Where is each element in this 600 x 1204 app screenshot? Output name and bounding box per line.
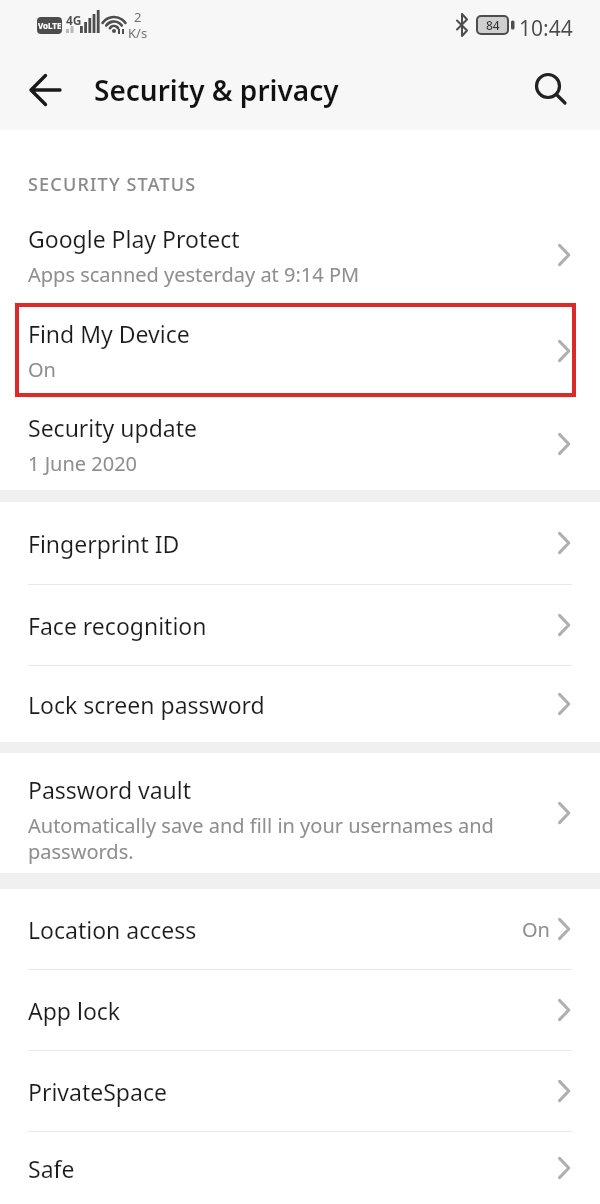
staticText: PrivateSpace (28, 1076, 167, 1107)
staticText: SECURITY STATUS (28, 172, 197, 197)
button[interactable]: Find My Device (0, 304, 600, 397)
staticText: VoLTE (38, 20, 62, 31)
staticText: 10:44 (519, 14, 573, 43)
staticText: App lock (28, 995, 121, 1026)
button[interactable]: Lock screen password (0, 666, 600, 742)
staticText: K/s (128, 24, 148, 42)
staticText: Password vault (28, 774, 192, 805)
staticText: 84 (486, 17, 500, 33)
staticText: Security & privacy (94, 71, 339, 109)
staticText: Safe (28, 1153, 75, 1184)
staticText: 2 (134, 8, 142, 26)
button[interactable] (18, 62, 74, 118)
button[interactable]: Password vault (0, 753, 600, 873)
button[interactable]: Google Play Protect (0, 207, 600, 303)
staticText: Find My Device (28, 318, 190, 349)
staticText: Location access (28, 914, 197, 945)
button[interactable]: Safe (0, 1132, 600, 1204)
button[interactable] (524, 63, 578, 117)
staticText: On (522, 916, 550, 943)
staticText: Apps scanned yesterday at 9:14 PM (28, 261, 360, 288)
button[interactable]: Location access (0, 889, 600, 969)
staticText: Lock screen password (28, 689, 265, 720)
button[interactable]: PrivateSpace (0, 1051, 600, 1131)
staticText: Google Play Protect (28, 223, 240, 254)
staticText: On (28, 356, 56, 383)
staticText: Fingerprint ID (28, 528, 180, 559)
button[interactable]: Face recognition (0, 585, 600, 665)
staticText: Security update (28, 412, 197, 443)
staticText: Automatically save and fill in your user… (28, 812, 494, 865)
staticText: Face recognition (28, 610, 207, 641)
button[interactable]: Fingerprint ID (0, 502, 600, 584)
button[interactable]: Security update (0, 398, 600, 490)
staticText: 4G (66, 12, 82, 28)
button[interactable]: App lock (0, 970, 600, 1050)
staticText: 1 June 2020 (28, 450, 138, 477)
